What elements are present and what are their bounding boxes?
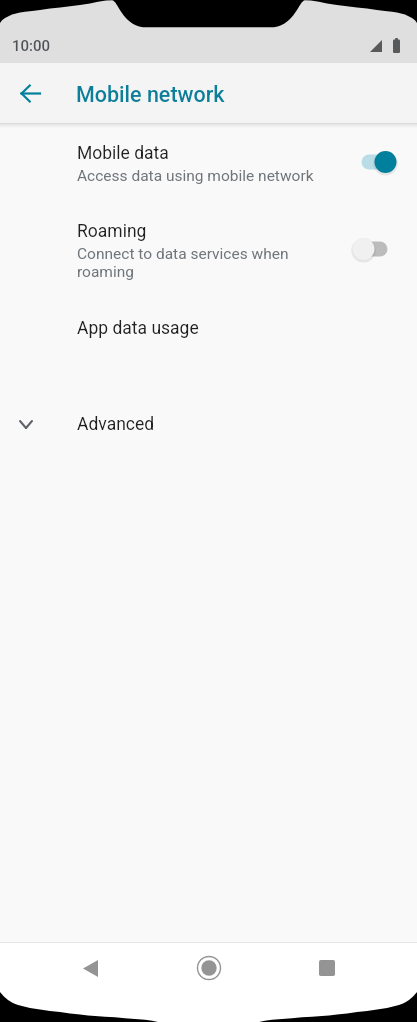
staticText: App data usage — [77, 318, 199, 339]
button[interactable]: Advanced — [0, 411, 417, 463]
staticText: Connect to data services when roaming — [77, 245, 322, 281]
staticText: Advanced — [77, 414, 155, 435]
staticText: Access data using mobile network — [77, 167, 314, 185]
staticText: 10:00 — [12, 37, 51, 55]
button[interactable]: App data usage — [0, 315, 417, 367]
staticText: Mobile network — [76, 82, 225, 107]
button[interactable]: Mobile data — [0, 140, 417, 192]
staticText: Mobile data — [77, 143, 169, 164]
button[interactable]: Home — [150, 943, 268, 993]
staticText: Roaming — [77, 221, 147, 242]
button[interactable]: Navigate up — [6, 69, 54, 117]
button[interactable]: Recent apps — [268, 943, 386, 993]
button[interactable]: Back — [31, 943, 150, 993]
button[interactable]: Roaming — [0, 218, 417, 288]
